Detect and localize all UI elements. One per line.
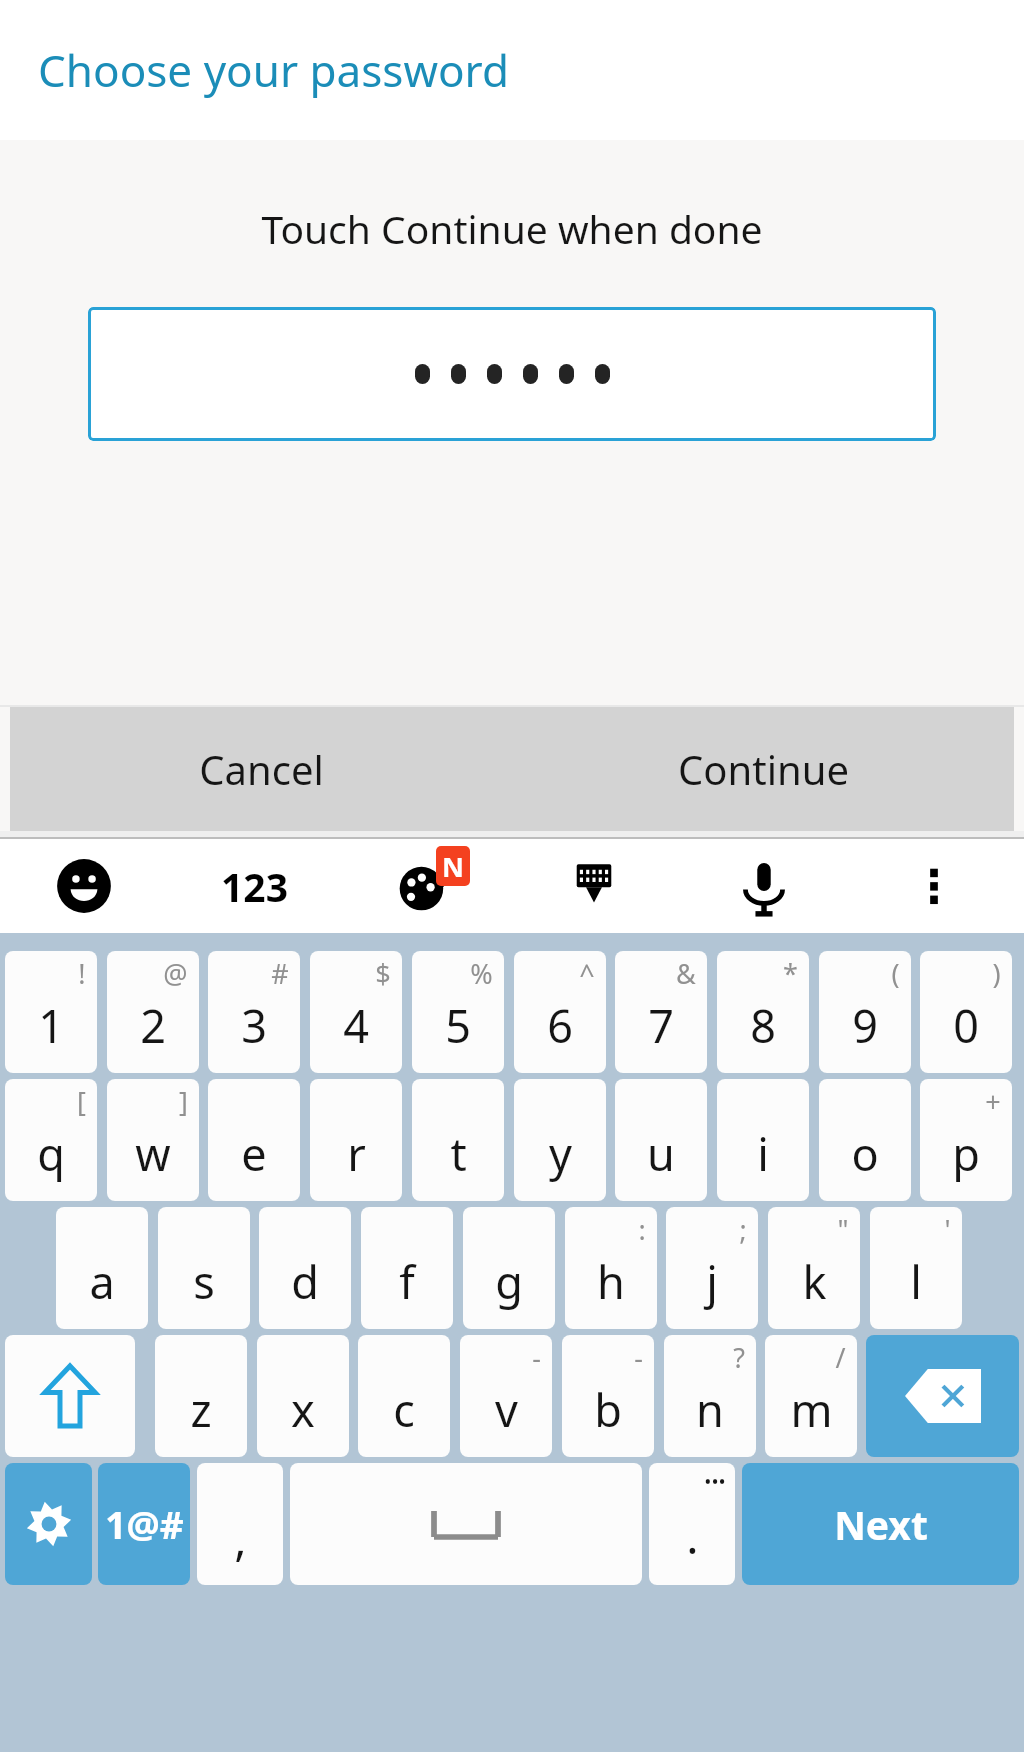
staticText: Next — [834, 1498, 928, 1551]
staticText: . — [686, 1505, 699, 1568]
staticText: + — [985, 1083, 1001, 1120]
button[interactable]: Next — [742, 1463, 1019, 1585]
staticText: o — [851, 1123, 879, 1184]
staticText: n — [696, 1379, 724, 1440]
staticText: 1@# — [105, 1499, 184, 1549]
staticText: : — [638, 1211, 646, 1248]
staticText: 7 — [648, 995, 674, 1056]
button[interactable]: 9 — [819, 951, 911, 1073]
staticText: 4 — [343, 995, 369, 1056]
button[interactable]: More options — [874, 839, 994, 933]
button[interactable]: s — [158, 1207, 250, 1329]
staticText: Touch Continue when done — [261, 202, 763, 255]
button[interactable]: Space — [290, 1463, 642, 1585]
staticText: " — [837, 1211, 849, 1248]
staticText: & — [676, 955, 696, 992]
button[interactable]: u — [615, 1079, 707, 1201]
staticText: * — [783, 955, 798, 992]
button[interactable]: i — [717, 1079, 809, 1201]
button[interactable]: Continue — [512, 707, 1014, 831]
staticText: w — [135, 1123, 171, 1184]
button[interactable]: q — [5, 1079, 97, 1201]
button[interactable]: r — [310, 1079, 402, 1201]
staticText: g — [495, 1251, 523, 1312]
staticText: s — [193, 1251, 215, 1312]
staticText: 2 — [140, 995, 166, 1056]
staticText: ? — [733, 1339, 745, 1376]
button[interactable]: z — [155, 1335, 247, 1457]
staticText: d — [291, 1251, 319, 1312]
staticText: f — [399, 1251, 415, 1312]
button[interactable]: 2 — [107, 951, 199, 1073]
staticText: ; — [739, 1211, 747, 1248]
staticText: v — [495, 1379, 518, 1440]
staticText: e — [241, 1123, 267, 1184]
staticText: ) — [992, 955, 1001, 992]
button[interactable]: h — [565, 1207, 657, 1329]
button[interactable]: k — [768, 1207, 860, 1329]
button[interactable]: v — [460, 1335, 552, 1457]
button[interactable]: e — [208, 1079, 300, 1201]
button[interactable]: o — [819, 1079, 911, 1201]
staticText: 1 — [38, 995, 64, 1056]
button[interactable]: Stickers — [364, 839, 484, 933]
button[interactable]: 6 — [514, 951, 606, 1073]
button[interactable] — [88, 307, 936, 441]
staticText: # — [271, 955, 289, 992]
staticText: 3 — [241, 995, 267, 1056]
staticText: r — [347, 1123, 366, 1184]
staticText: 6 — [547, 995, 573, 1056]
button[interactable]: Cancel — [10, 707, 512, 831]
button[interactable]: , — [197, 1463, 283, 1585]
staticText: ••• — [704, 1469, 726, 1495]
button[interactable]: a — [56, 1207, 148, 1329]
button[interactable]: Emoji — [24, 839, 144, 933]
button[interactable]: j — [666, 1207, 758, 1329]
button[interactable]: 8 — [717, 951, 809, 1073]
button[interactable]: Settings — [5, 1463, 92, 1585]
button[interactable]: p — [920, 1079, 1012, 1201]
staticText: t — [450, 1123, 467, 1184]
button[interactable]: f — [361, 1207, 453, 1329]
staticText: b — [594, 1379, 622, 1440]
button[interactable]: Backspace — [866, 1335, 1019, 1457]
button[interactable]: Voice input — [704, 839, 824, 933]
staticText: Cancel — [199, 742, 324, 796]
staticText: i — [757, 1123, 769, 1184]
button[interactable]: 4 — [310, 951, 402, 1073]
button[interactable]: Hide keyboard — [534, 839, 654, 933]
button[interactable]: n — [664, 1335, 756, 1457]
button[interactable]: . — [649, 1463, 735, 1585]
staticText: @ — [163, 955, 188, 992]
staticText: q — [37, 1123, 65, 1184]
button[interactable]: g — [463, 1207, 555, 1329]
button[interactable]: x — [257, 1335, 349, 1457]
button[interactable]: 1 — [5, 951, 97, 1073]
button[interactable]: b — [562, 1335, 654, 1457]
button[interactable]: c — [358, 1335, 450, 1457]
button[interactable]: 3 — [208, 951, 300, 1073]
staticText: ' — [944, 1211, 951, 1248]
button[interactable]: Shift — [5, 1335, 135, 1457]
button[interactable]: l — [870, 1207, 962, 1329]
staticText: % — [470, 955, 493, 992]
button[interactable]: 123 — [184, 839, 324, 933]
staticText: / — [835, 1339, 846, 1376]
button[interactable]: 0 — [920, 951, 1012, 1073]
staticText: 0 — [953, 995, 979, 1056]
staticText: 9 — [852, 995, 878, 1056]
button[interactable]: m — [765, 1335, 857, 1457]
button[interactable]: t — [412, 1079, 504, 1201]
button[interactable]: d — [259, 1207, 351, 1329]
staticText: m — [790, 1379, 833, 1440]
button[interactable]: 5 — [412, 951, 504, 1073]
staticText: j — [706, 1251, 718, 1312]
staticText: [ — [77, 1083, 86, 1120]
staticText: h — [597, 1251, 625, 1312]
staticText: 5 — [445, 995, 471, 1056]
staticText: k — [802, 1251, 827, 1312]
button[interactable]: w — [107, 1079, 199, 1201]
button[interactable]: y — [514, 1079, 606, 1201]
button[interactable]: 1@# — [98, 1463, 190, 1585]
button[interactable]: 7 — [615, 951, 707, 1073]
